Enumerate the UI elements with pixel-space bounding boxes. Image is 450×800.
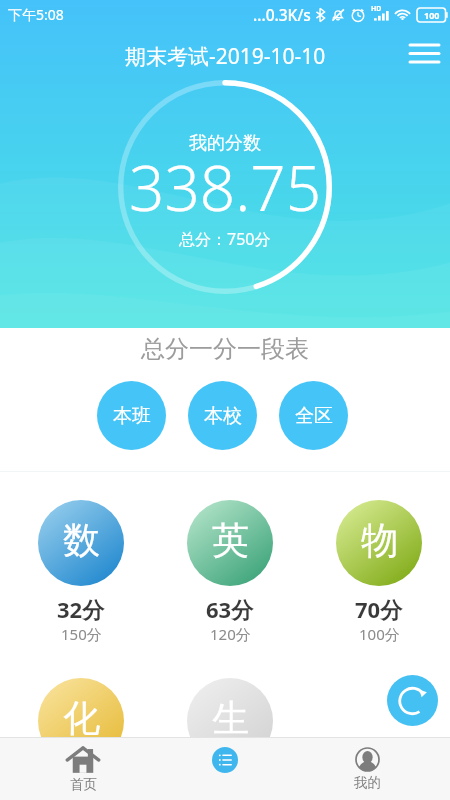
staticText: 总分：750分 xyxy=(179,228,271,250)
staticText: 全区 xyxy=(295,404,333,428)
button[interactable]: 我的 xyxy=(296,738,438,800)
staticText: 期末考试-2019-10-10 xyxy=(125,42,326,71)
staticText: 下午5:08 xyxy=(8,5,64,24)
button[interactable]: Menu xyxy=(402,33,446,73)
staticText: 32分 xyxy=(57,594,105,624)
button[interactable]: 数 xyxy=(38,500,124,586)
button[interactable]: Score list xyxy=(154,738,296,800)
staticText: 100 xyxy=(424,9,440,21)
staticText: 物 xyxy=(361,517,398,564)
staticText: 本校 xyxy=(204,404,242,428)
button[interactable]: Refresh xyxy=(387,675,438,726)
staticText: 我的 xyxy=(354,774,381,791)
button[interactable]: 化 xyxy=(38,678,124,737)
button[interactable]: 首页 xyxy=(12,738,154,800)
staticText: HD xyxy=(371,4,382,14)
staticText: 120分 xyxy=(210,624,251,644)
staticText: 本班 xyxy=(113,404,151,428)
staticText: 总分一分一段表 xyxy=(0,334,450,364)
button[interactable]: 全区 xyxy=(279,381,348,450)
staticText: 100分 xyxy=(359,624,400,644)
staticText: 英 xyxy=(212,517,249,564)
staticText: 数 xyxy=(63,517,100,564)
staticText: 我的分数 xyxy=(189,132,261,155)
button[interactable]: 本校 xyxy=(188,381,257,450)
staticText: 70分 xyxy=(355,594,403,624)
button[interactable]: 本班 xyxy=(97,381,166,450)
staticText: 化 xyxy=(63,695,100,737)
staticText: 首页 xyxy=(70,776,97,793)
button[interactable]: 英 xyxy=(187,500,273,586)
staticText: ...0.3K/s xyxy=(253,4,311,25)
staticText: 生 xyxy=(212,695,249,737)
button[interactable]: 生 xyxy=(187,678,273,737)
staticText: 338.75 xyxy=(129,145,322,229)
button[interactable]: 物 xyxy=(336,500,422,586)
staticText: 150分 xyxy=(61,624,102,644)
staticText: 63分 xyxy=(206,594,254,624)
